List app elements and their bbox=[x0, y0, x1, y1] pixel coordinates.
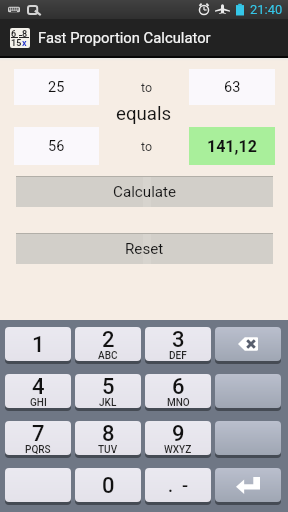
staticText: 4 bbox=[32, 374, 45, 400]
button[interactable]: blank key bbox=[5, 468, 71, 505]
button[interactable]: 63 bbox=[189, 69, 275, 105]
staticText: . - bbox=[168, 475, 189, 496]
staticText: 15 bbox=[11, 38, 22, 48]
staticText: 21:40 bbox=[250, 2, 283, 17]
staticText: MNO bbox=[167, 397, 190, 408]
button[interactable]: Key bbox=[215, 421, 281, 458]
staticText: 3 bbox=[172, 327, 185, 353]
button[interactable]: 0 bbox=[75, 468, 141, 505]
staticText: TUV bbox=[98, 444, 118, 455]
staticText: equals bbox=[116, 103, 172, 125]
button[interactable]: Enter bbox=[215, 468, 281, 505]
staticText: x bbox=[22, 38, 27, 48]
staticText: PQRS bbox=[25, 444, 51, 455]
button[interactable]: Calculate bbox=[16, 176, 273, 207]
button[interactable]: 56 bbox=[14, 127, 99, 165]
staticText: to bbox=[141, 139, 153, 154]
staticText: to bbox=[141, 80, 153, 95]
button[interactable]: 25 bbox=[14, 69, 99, 105]
button[interactable]: Backspace bbox=[215, 327, 281, 364]
staticText: 5 bbox=[102, 374, 115, 400]
button[interactable]: dot dash bbox=[145, 468, 211, 505]
staticText: Calculate bbox=[113, 183, 177, 201]
staticText: DEF bbox=[169, 350, 187, 361]
button[interactable]: 8 bbox=[75, 421, 141, 458]
staticText: 7 bbox=[32, 421, 45, 447]
staticText: 2 bbox=[102, 327, 115, 353]
button[interactable]: 6 bbox=[0, 19, 288, 56]
staticText: 6 bbox=[172, 374, 185, 400]
staticText: 141,12 bbox=[207, 137, 257, 156]
staticText: GHI bbox=[30, 397, 47, 408]
staticText: 25 bbox=[48, 79, 65, 96]
button[interactable]: 3 bbox=[145, 327, 211, 364]
button[interactable]: Reset bbox=[16, 233, 273, 264]
staticText: JKL bbox=[99, 397, 117, 408]
button[interactable]: Key bbox=[215, 374, 281, 411]
button[interactable]: 2 bbox=[75, 327, 141, 364]
button[interactable]: 7 bbox=[5, 421, 71, 458]
staticText: Fast Proportion Calculator bbox=[38, 29, 211, 46]
staticText: 8 bbox=[22, 29, 28, 40]
staticText: ABC bbox=[98, 350, 118, 361]
staticText: 8 bbox=[102, 421, 115, 447]
staticText: WXYZ bbox=[164, 444, 192, 455]
staticText: Reset bbox=[125, 240, 164, 258]
button[interactable]: 5 bbox=[75, 374, 141, 411]
staticText: 9 bbox=[172, 421, 185, 447]
button[interactable]: 4 bbox=[5, 374, 71, 411]
button[interactable]: 6 bbox=[145, 374, 211, 411]
button[interactable]: 1 bbox=[5, 327, 71, 364]
staticText: 6 bbox=[11, 29, 17, 40]
staticText: 1 bbox=[32, 332, 45, 358]
staticText: 56 bbox=[48, 138, 65, 155]
button[interactable]: 141,12 bbox=[189, 127, 275, 165]
staticText: 0 bbox=[102, 473, 115, 499]
staticText: 63 bbox=[224, 79, 241, 96]
button[interactable]: 9 bbox=[145, 421, 211, 458]
